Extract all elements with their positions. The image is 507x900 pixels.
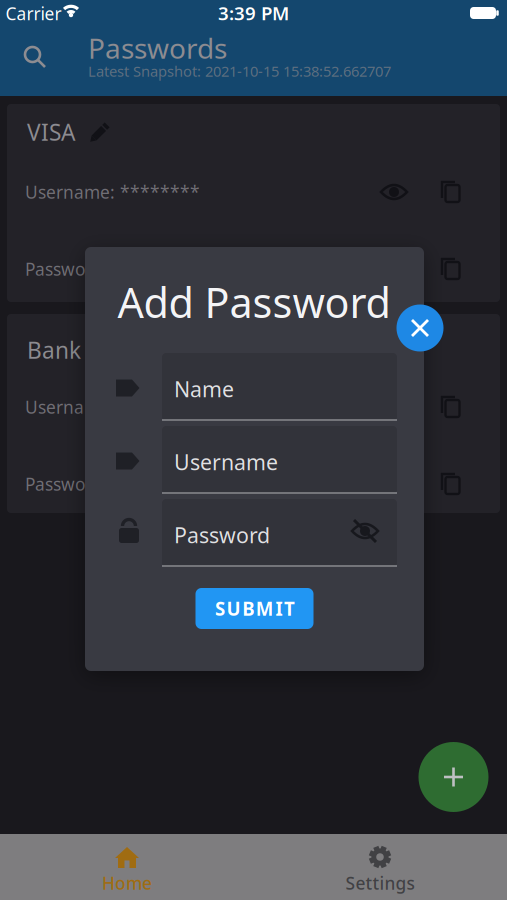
staticText: Password: ******** bbox=[25, 472, 193, 495]
staticText: Username: ******** bbox=[25, 180, 200, 203]
button[interactable]: Edit VISA bbox=[84, 118, 114, 148]
button[interactable]: Show username bbox=[377, 390, 411, 424]
button[interactable]: Show password bbox=[377, 467, 411, 501]
button[interactable]: Copy password bbox=[435, 467, 469, 501]
staticText: 3:39 PM bbox=[218, 1, 289, 25]
staticText: Username bbox=[174, 448, 278, 476]
button[interactable]: Copy password bbox=[435, 252, 469, 286]
button[interactable]: Show username bbox=[377, 175, 411, 209]
staticText: Bank bbox=[27, 335, 81, 365]
button[interactable]: Home bbox=[67, 835, 187, 897]
staticText: Password: ******** bbox=[25, 257, 193, 280]
staticText: Name bbox=[174, 375, 234, 403]
button[interactable]: Edit Bank bbox=[84, 336, 114, 366]
button[interactable]: Add password bbox=[418, 742, 488, 812]
staticText: Latest Snapshot: 2021-10-15 15:38:52.662… bbox=[88, 61, 391, 81]
staticText: Passwords bbox=[88, 29, 227, 67]
button[interactable]: SUBMIT bbox=[195, 588, 313, 629]
staticText: SUBMIT bbox=[215, 596, 295, 621]
staticText: Home bbox=[102, 871, 152, 894]
staticText: VISA bbox=[27, 117, 75, 147]
button[interactable]: Copy username bbox=[435, 175, 469, 209]
button[interactable]: Search bbox=[18, 40, 54, 76]
staticText: Password bbox=[174, 521, 270, 549]
staticText: Add Password bbox=[117, 275, 390, 329]
staticText: Carrier bbox=[5, 2, 61, 25]
button[interactable]: Close bbox=[396, 304, 444, 352]
button[interactable]: Copy username bbox=[435, 390, 469, 424]
button[interactable]: Settings bbox=[320, 835, 440, 897]
staticText: Settings bbox=[345, 871, 414, 894]
button[interactable]: Toggle password visibility bbox=[347, 513, 383, 549]
staticText: Username: ******** bbox=[25, 395, 200, 418]
